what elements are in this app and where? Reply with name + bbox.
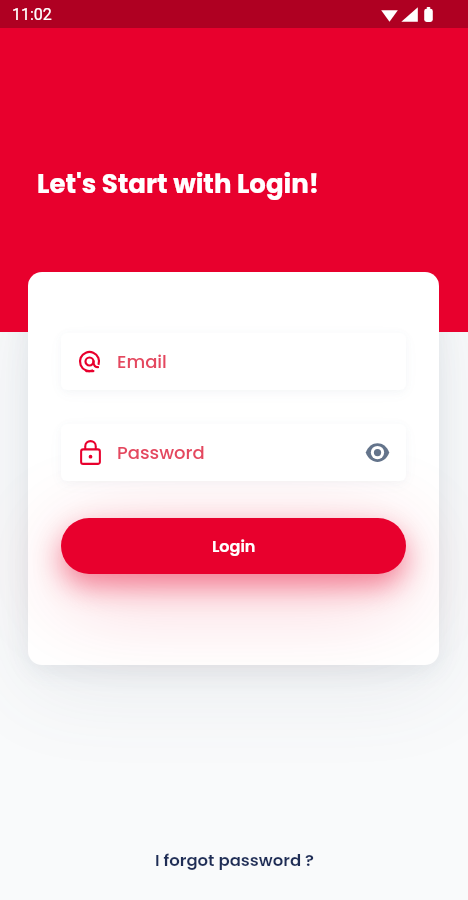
button[interactable]: I forgot password ?: [147, 845, 322, 876]
staticText: Email: [117, 349, 167, 374]
staticText: Password: [117, 440, 205, 465]
staticText: Login: [212, 535, 256, 557]
button[interactable]: Password: [61, 424, 406, 481]
button[interactable]: Show password: [365, 440, 390, 465]
staticText: Let's Start with Login!: [37, 166, 319, 202]
button[interactable]: Email: [61, 333, 406, 390]
staticText: I forgot password ?: [155, 849, 314, 872]
staticText: 11:02: [12, 5, 52, 24]
button[interactable]: Login: [61, 518, 406, 574]
